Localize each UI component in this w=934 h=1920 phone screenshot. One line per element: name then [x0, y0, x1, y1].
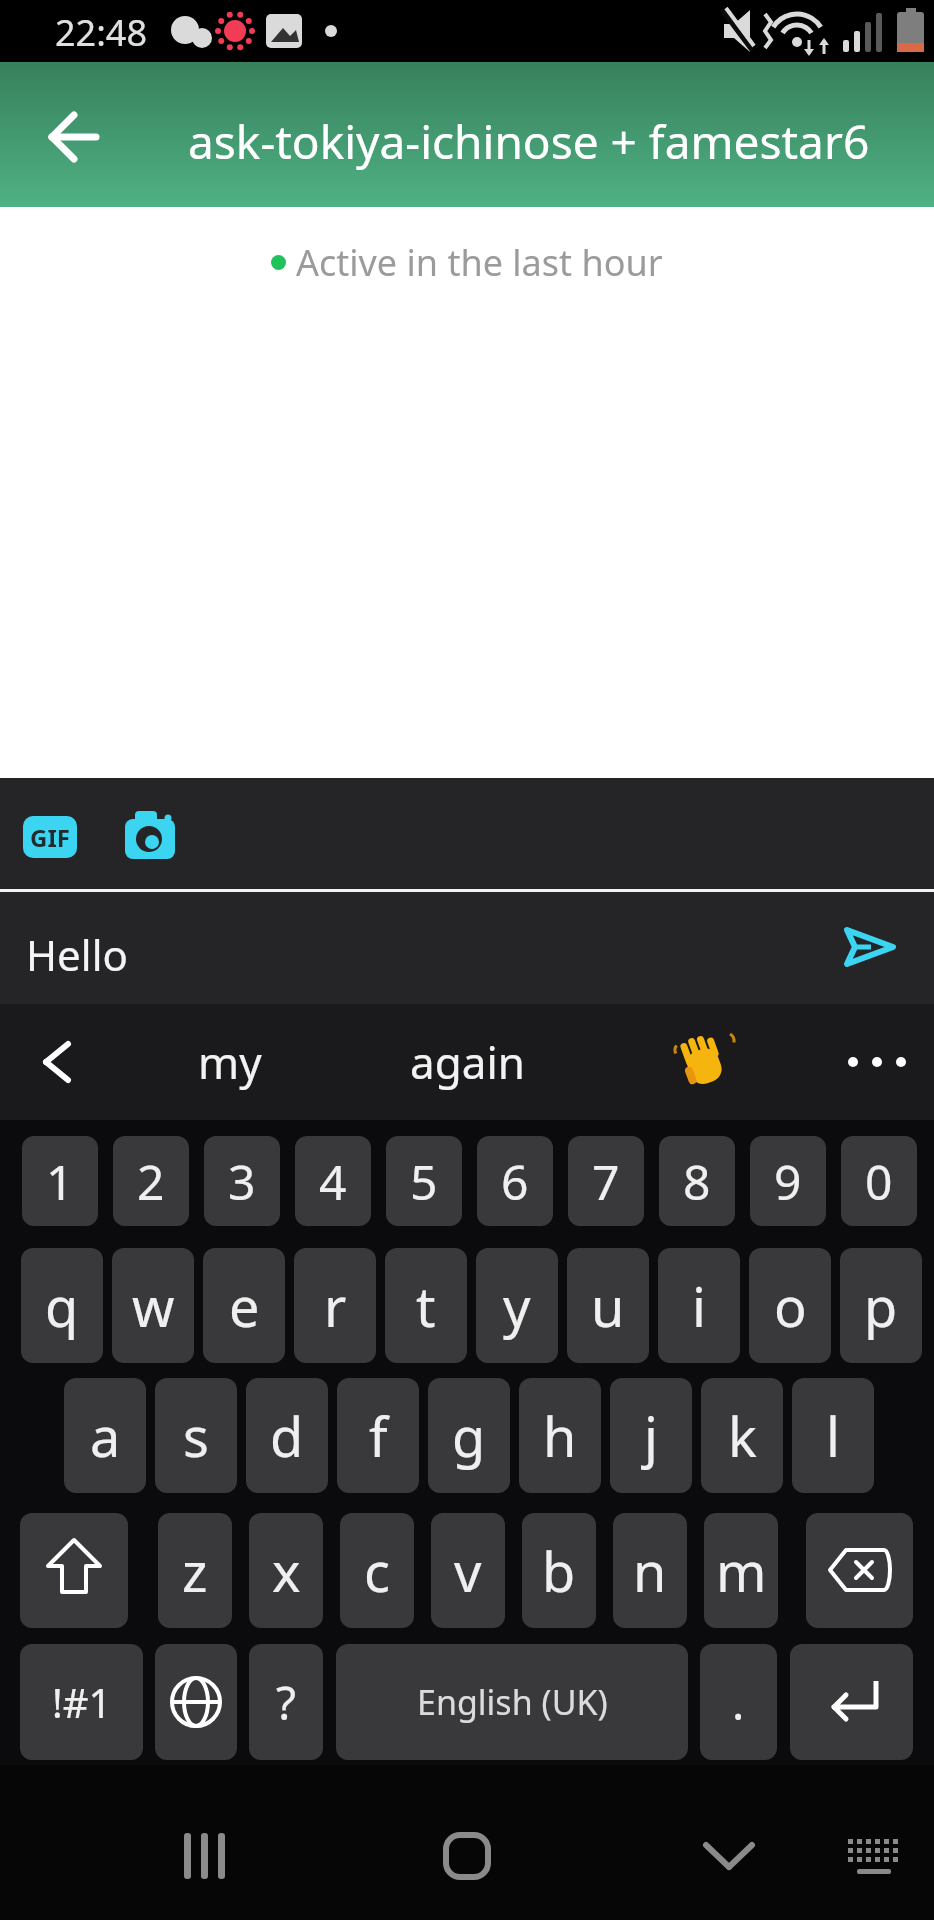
button[interactable] [155, 1644, 237, 1760]
button[interactable]: w [112, 1248, 194, 1363]
button[interactable]: f [337, 1378, 419, 1493]
button[interactable]: p [840, 1248, 922, 1363]
staticText: 6 [501, 1149, 529, 1214]
staticText: z [182, 1534, 208, 1608]
staticText: m [716, 1534, 767, 1608]
staticText: 7 [592, 1149, 620, 1214]
staticText: 9 [774, 1149, 802, 1214]
staticText: x [272, 1534, 301, 1608]
button[interactable]: q [21, 1248, 103, 1363]
button[interactable]: z [158, 1513, 232, 1628]
staticText: v [454, 1534, 482, 1608]
staticText: . [732, 1671, 745, 1734]
staticText: 5 [410, 1149, 438, 1214]
button[interactable]: b [522, 1513, 596, 1628]
staticText: 0 [865, 1149, 893, 1214]
button[interactable]: t [385, 1248, 467, 1363]
button[interactable]: 9 [750, 1136, 826, 1226]
button[interactable]: d [246, 1378, 328, 1493]
button[interactable]: Hello [0, 892, 820, 1004]
staticText: r [324, 1269, 347, 1343]
staticText: English (UK) [417, 1679, 608, 1725]
staticText: 1 [46, 1149, 74, 1214]
button[interactable] [678, 1035, 732, 1089]
staticText: a [90, 1399, 121, 1473]
button[interactable]: j [610, 1378, 692, 1493]
button[interactable] [806, 1513, 913, 1628]
staticText: i [692, 1269, 706, 1343]
staticText: GIF [30, 821, 70, 854]
staticText: e [229, 1269, 260, 1343]
button[interactable]: c [340, 1513, 414, 1628]
button[interactable] [125, 811, 175, 861]
button[interactable]: 7 [568, 1136, 644, 1226]
button[interactable]: x [249, 1513, 323, 1628]
staticText: p [864, 1269, 898, 1343]
button[interactable]: k [701, 1378, 783, 1493]
staticText: n [633, 1534, 667, 1608]
button[interactable]: 0 [841, 1136, 917, 1226]
staticText: g [452, 1399, 486, 1473]
button[interactable]: h [519, 1378, 601, 1493]
staticText: s [183, 1399, 209, 1473]
button[interactable]: again [390, 1004, 544, 1120]
staticText: 8 [683, 1149, 711, 1214]
staticText: q [45, 1269, 79, 1343]
button[interactable] [845, 924, 895, 970]
button[interactable]: English (UK) [336, 1644, 688, 1760]
staticText: w [132, 1269, 175, 1343]
button[interactable]: g [428, 1378, 510, 1493]
button[interactable]: 2 [113, 1136, 189, 1226]
button[interactable]: . [700, 1644, 777, 1760]
staticText: l [826, 1399, 840, 1473]
staticText: ask-tokiya-ichinose + famestar6 [188, 110, 870, 173]
button[interactable]: 3 [204, 1136, 280, 1226]
button[interactable]: n [613, 1513, 687, 1628]
staticText: ? [276, 1671, 296, 1734]
button[interactable]: v [431, 1513, 505, 1628]
staticText: h [543, 1399, 577, 1473]
button[interactable] [40, 1044, 76, 1080]
button[interactable]: y [476, 1248, 558, 1363]
button[interactable]: ? [249, 1644, 323, 1760]
button[interactable] [38, 98, 108, 176]
staticText: j [644, 1399, 658, 1473]
button[interactable] [848, 1839, 900, 1875]
staticText: f [369, 1399, 388, 1473]
staticText: b [542, 1534, 576, 1608]
button[interactable]: m [704, 1513, 778, 1628]
button[interactable] [20, 1513, 128, 1628]
button[interactable] [184, 1833, 228, 1879]
button[interactable]: 5 [386, 1136, 462, 1226]
button[interactable] [444, 1833, 490, 1879]
button[interactable]: u [567, 1248, 649, 1363]
button[interactable]: l [792, 1378, 874, 1493]
button[interactable]: 6 [477, 1136, 553, 1226]
staticText: my [198, 1032, 262, 1092]
staticText: t [416, 1269, 436, 1343]
staticText: again [410, 1032, 525, 1092]
button[interactable] [845, 1054, 909, 1070]
button[interactable]: 1 [22, 1136, 98, 1226]
staticText: Hello [26, 926, 128, 983]
staticText: y [503, 1269, 531, 1343]
button[interactable]: e [203, 1248, 285, 1363]
button[interactable]: my [160, 1004, 300, 1120]
staticText: k [728, 1399, 757, 1473]
button[interactable]: a [64, 1378, 146, 1493]
staticText: u [591, 1269, 625, 1343]
button[interactable] [706, 1845, 752, 1869]
button[interactable]: s [155, 1378, 237, 1493]
button[interactable]: i [658, 1248, 740, 1363]
button[interactable]: !#1 [20, 1644, 143, 1760]
button[interactable]: o [749, 1248, 831, 1363]
button[interactable]: r [294, 1248, 376, 1363]
staticText: o [774, 1269, 807, 1343]
button[interactable]: 8 [659, 1136, 735, 1226]
staticText: 22:48 [55, 8, 148, 57]
button[interactable]: 4 [295, 1136, 371, 1226]
button[interactable] [790, 1644, 913, 1760]
staticText: 4 [319, 1149, 347, 1214]
staticText: 2 [137, 1149, 165, 1214]
button[interactable]: GIF [23, 816, 77, 858]
